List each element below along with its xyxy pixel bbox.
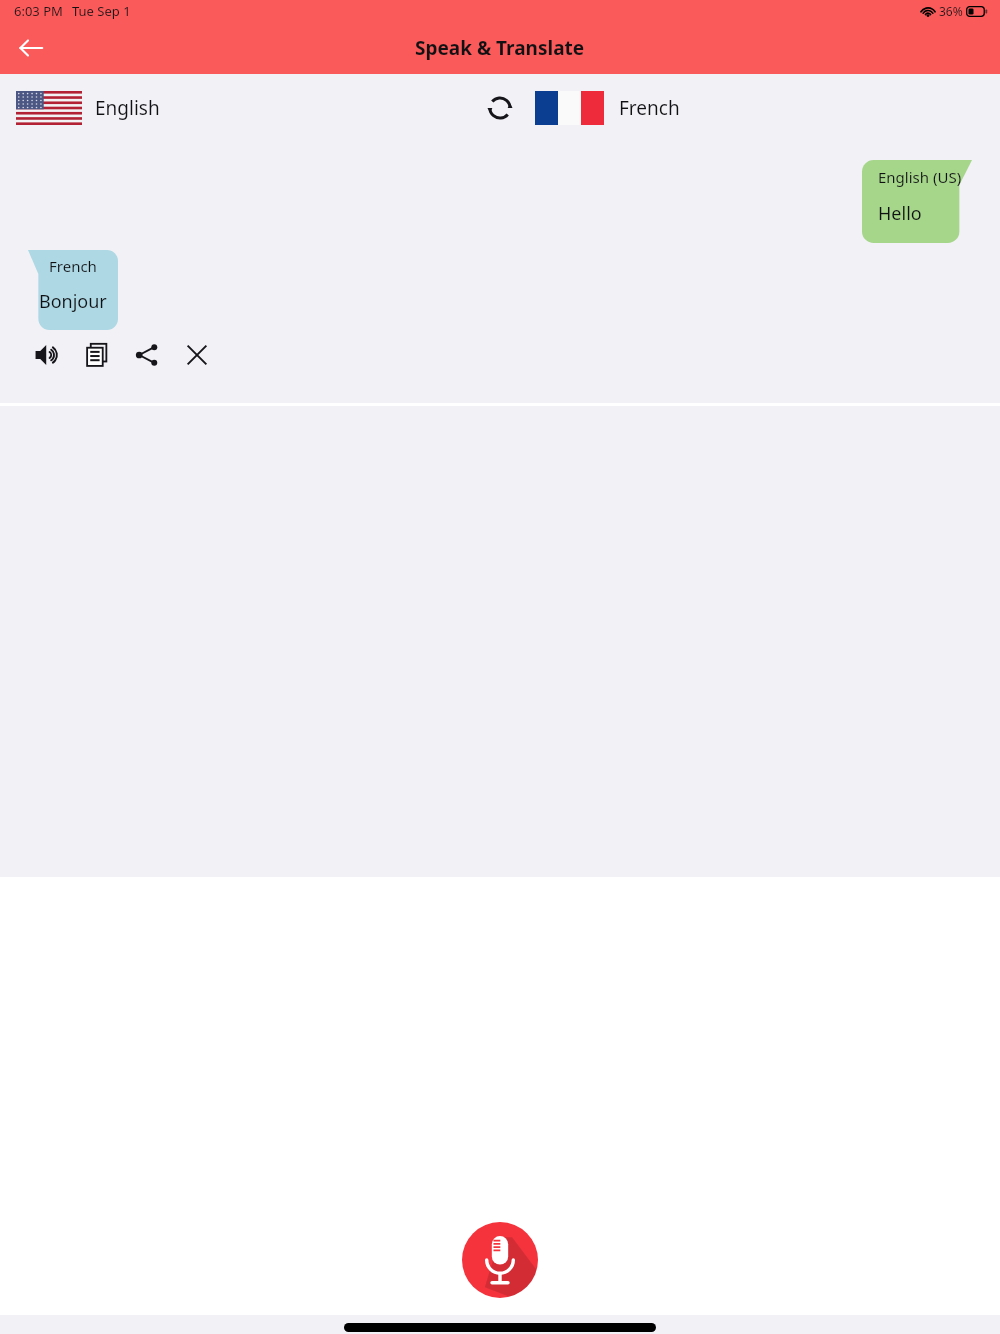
button[interactable]: French — [535, 74, 680, 142]
button[interactable]: Swap languages — [478, 86, 522, 130]
staticText: 6:03 PM — [14, 2, 63, 20]
button[interactable]: Close — [180, 338, 214, 372]
staticText: Tue Sep 1 — [72, 2, 131, 20]
staticText: 36% — [939, 3, 963, 19]
staticText: French — [619, 95, 680, 121]
staticText: English — [95, 95, 160, 121]
button[interactable]: English (US) — [862, 160, 972, 243]
button[interactable]: French — [28, 250, 118, 330]
staticText: Bonjour — [39, 289, 107, 314]
staticText: Hello — [878, 201, 922, 226]
staticText: French — [49, 256, 97, 276]
staticText: English (US) — [878, 167, 962, 187]
button[interactable]: Back — [10, 27, 52, 69]
button[interactable]: Copy — [80, 338, 114, 372]
button[interactable]: Start speaking — [462, 1222, 538, 1298]
button[interactable]: Share — [130, 338, 164, 372]
staticText: Speak & Translate — [415, 35, 585, 61]
button[interactable]: English — [16, 91, 160, 125]
button[interactable]: Speak — [30, 338, 64, 372]
